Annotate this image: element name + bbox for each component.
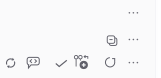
button[interactable]: More options	[121, 30, 145, 48]
button[interactable]: More actions	[121, 54, 145, 72]
button[interactable]: Retry	[1, 54, 21, 72]
button[interactable]: New branch	[72, 53, 92, 71]
button[interactable]: Restore	[100, 53, 120, 71]
button[interactable]: Collapse	[101, 31, 121, 49]
button[interactable]: Accept	[51, 54, 71, 72]
button[interactable]: More options	[121, 4, 145, 22]
button[interactable]: Comment	[23, 53, 43, 71]
